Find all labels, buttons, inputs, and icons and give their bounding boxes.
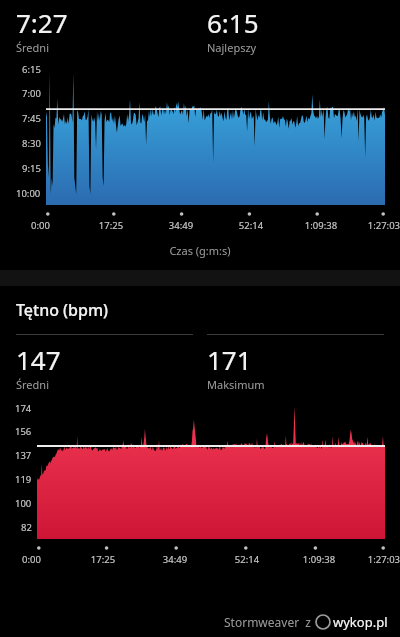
staticText: 8:30 <box>22 137 41 149</box>
staticText: 1:09:38 <box>283 553 355 566</box>
staticText: 6:15 <box>207 5 259 40</box>
staticText: 171 <box>207 342 252 377</box>
button[interactable]: 147 <box>16 334 193 392</box>
staticText: 0:00 <box>22 553 67 566</box>
staticText: 7:00 <box>22 87 41 99</box>
staticText: 52:14 <box>211 553 283 566</box>
staticText: 7:27 <box>16 5 68 40</box>
staticText: 147 <box>16 342 61 377</box>
staticText: wykop.pl <box>333 613 388 631</box>
staticText: 34:49 <box>146 219 216 232</box>
button[interactable]: 7:27 <box>16 5 193 55</box>
staticText: 9:15 <box>22 162 41 174</box>
staticText: 52:14 <box>216 219 286 232</box>
staticText: 17:25 <box>76 219 146 232</box>
staticText: 17:25 <box>67 553 139 566</box>
staticText: 1:09:38 <box>286 219 356 232</box>
staticText: 10:00 <box>16 187 41 199</box>
staticText: 156 <box>15 425 32 437</box>
staticText: 100 <box>15 497 32 509</box>
staticText: Stormweaver z <box>224 614 315 630</box>
staticText: 0:00 <box>31 219 76 232</box>
staticText: 174 <box>15 402 32 414</box>
staticText: 137 <box>15 449 32 461</box>
staticText: Czas (g:m:s) <box>0 243 400 258</box>
staticText: 1:27:03 <box>356 219 400 232</box>
staticText: 34:49 <box>139 553 211 566</box>
staticText: Średni <box>16 377 49 392</box>
button[interactable]: 6:15 <box>207 5 384 55</box>
button[interactable]: 171 <box>207 334 384 392</box>
other: wykop.pl <box>315 614 331 630</box>
staticText: 7:45 <box>22 112 41 124</box>
button[interactable]: Tętno (bpm) <box>16 299 109 321</box>
staticText: Tętno (bpm) <box>16 299 109 321</box>
staticText: Maksimum <box>207 377 265 392</box>
staticText: 82 <box>21 521 32 533</box>
staticText: 6:15 <box>22 63 41 75</box>
staticText: Najlepszy <box>207 40 257 55</box>
staticText: 119 <box>15 473 32 485</box>
staticText: 1:27:03 <box>355 553 400 566</box>
staticText: Średni <box>16 40 49 55</box>
